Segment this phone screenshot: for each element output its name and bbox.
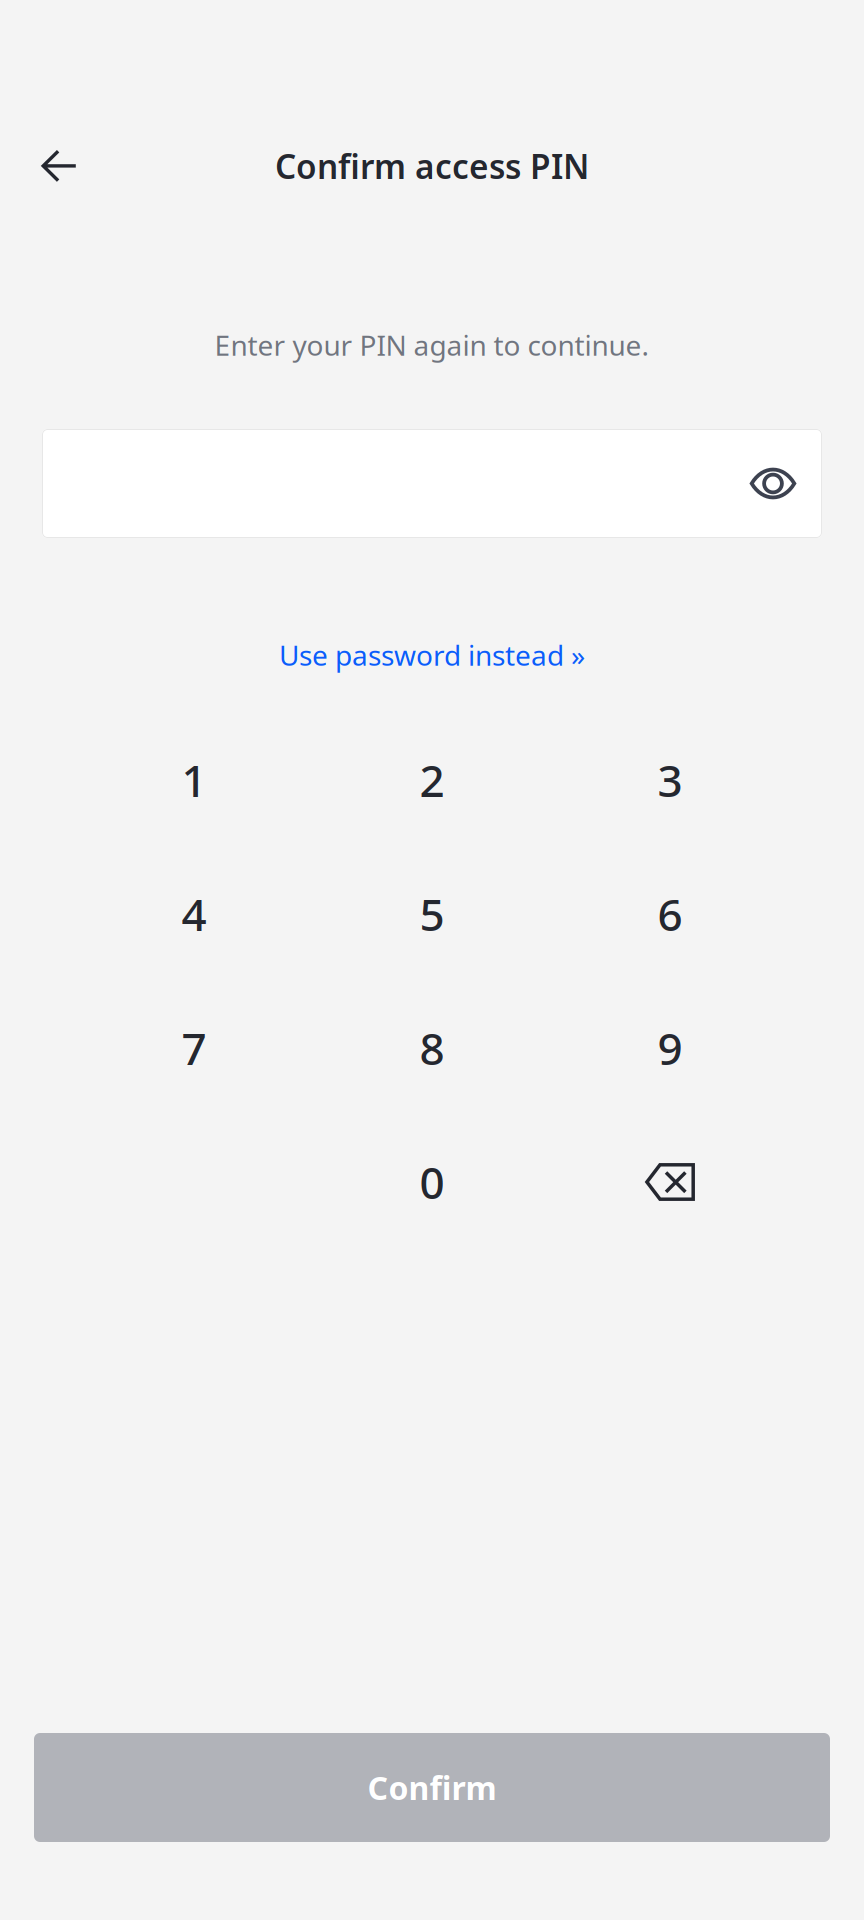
staticText: 2 (419, 751, 444, 809)
staticText: 1 (181, 751, 206, 809)
button[interactable]: 3 (551, 713, 789, 847)
staticText: Use password instead » (279, 636, 585, 674)
staticText: 6 (657, 885, 682, 943)
staticText: Confirm (367, 1766, 496, 1809)
button[interactable]: 8 (313, 981, 551, 1115)
button[interactable]: 7 (75, 981, 313, 1115)
button[interactable]: 4 (75, 847, 313, 981)
button[interactable]: 5 (313, 847, 551, 981)
button[interactable]: Show PIN (734, 444, 812, 522)
staticText: Enter your PIN again to continue. (214, 326, 649, 364)
staticText: Confirm access PIN (275, 144, 589, 188)
button[interactable]: 1 (75, 713, 313, 847)
button[interactable]: 9 (551, 981, 789, 1115)
button[interactable]: Back (21, 128, 97, 204)
button[interactable]: 6 (551, 847, 789, 981)
staticText: 8 (419, 1019, 444, 1077)
button[interactable]: Confirm (34, 1733, 830, 1842)
staticText: 5 (419, 885, 444, 943)
button[interactable]: 0 (313, 1115, 551, 1249)
staticText: 9 (657, 1019, 682, 1077)
button[interactable]: Delete (551, 1115, 789, 1249)
staticText: 7 (181, 1019, 206, 1077)
button[interactable]: 2 (313, 713, 551, 847)
staticText: 4 (181, 885, 206, 943)
staticText: 0 (419, 1153, 444, 1211)
button[interactable]: Use password instead » (255, 631, 609, 679)
staticText: 3 (657, 751, 682, 809)
